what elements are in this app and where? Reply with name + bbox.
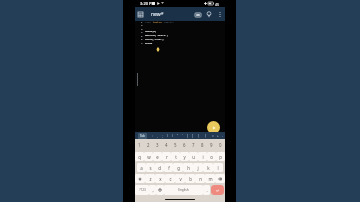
button[interactable]: { <box>195 132 202 139</box>
button[interactable]: ?123 <box>135 185 149 195</box>
button[interactable]: Tips <box>204 10 213 19</box>
button[interactable]: ] <box>190 132 195 139</box>
staticText: color('cyan') <box>145 37 164 40</box>
button[interactable]: v <box>175 174 185 183</box>
button[interactable]: Terminal <box>193 10 202 19</box>
staticText: h <box>187 165 190 171</box>
staticText: from <box>145 20 153 23</box>
staticText: a <box>140 165 143 171</box>
staticText: u <box>192 154 195 160</box>
button[interactable]: q <box>135 152 144 161</box>
button[interactable]: , <box>155 132 160 139</box>
button[interactable]: p <box>216 152 225 161</box>
button[interactable]: ) <box>170 132 175 139</box>
button[interactable]: m <box>205 174 215 183</box>
button[interactable]: s <box>146 163 155 172</box>
staticText: : <box>152 134 153 138</box>
button[interactable]: c <box>165 174 175 183</box>
button[interactable]: Navigation menu <box>136 10 145 19</box>
button[interactable]: : <box>150 132 155 139</box>
button[interactable]: e <box>153 152 162 161</box>
staticText: new* <box>151 11 164 18</box>
staticText: 3 <box>141 27 143 30</box>
staticText: k <box>207 165 210 171</box>
button[interactable]: y <box>180 152 189 161</box>
button[interactable]: o <box>207 152 216 161</box>
button[interactable]: Emoji <box>156 185 164 195</box>
button[interactable]: } <box>202 132 210 139</box>
staticText: b <box>189 176 192 182</box>
staticText: 45 <box>215 2 220 7</box>
staticText: c <box>169 176 172 182</box>
button[interactable]: 7 <box>189 139 198 151</box>
button[interactable]: Backspace <box>215 174 225 183</box>
staticText: x <box>159 176 162 182</box>
staticText: 2 <box>141 23 143 26</box>
staticText: g <box>177 165 180 171</box>
button[interactable]: More options <box>215 10 224 19</box>
staticText: q <box>138 154 141 160</box>
button[interactable]: + <box>215 132 220 139</box>
button[interactable]: 3 <box>153 139 162 151</box>
button[interactable]: 5 <box>171 139 180 151</box>
staticText: 7 <box>141 41 143 44</box>
staticText: ( <box>167 134 168 138</box>
staticText: speed(0) <box>145 29 157 32</box>
staticText: z <box>149 176 152 182</box>
staticText: l <box>217 165 219 171</box>
button[interactable]: English <box>164 185 203 195</box>
button[interactable]: t <box>171 152 180 161</box>
button[interactable]: ( <box>165 132 170 139</box>
button[interactable]: 6 <box>180 139 189 151</box>
button[interactable]: - <box>220 132 225 139</box>
button[interactable]: ' <box>180 132 185 139</box>
button[interactable]: i <box>198 152 207 161</box>
staticText: o <box>210 154 213 160</box>
button[interactable]: Shift <box>135 174 145 183</box>
staticText: English <box>178 188 189 192</box>
button[interactable]: ; <box>160 132 165 139</box>
button[interactable]: r <box>162 152 171 161</box>
staticText: n <box>199 176 202 182</box>
button[interactable]: Run <box>207 121 220 134</box>
button[interactable]: w <box>144 152 153 161</box>
button[interactable]: x <box>155 174 165 183</box>
button[interactable]: 0 <box>216 139 225 151</box>
staticText: 3 <box>156 142 159 148</box>
button[interactable]: [ <box>185 132 190 139</box>
staticText: 5 <box>141 34 143 37</box>
staticText: 1 <box>138 142 141 148</box>
staticText: r <box>166 154 168 160</box>
button[interactable]: 9 <box>207 139 216 151</box>
button[interactable]: g <box>173 163 183 172</box>
button[interactable]: , <box>149 185 156 195</box>
button[interactable]: . <box>203 185 210 195</box>
staticText: 1 <box>141 20 143 23</box>
button[interactable]: " <box>175 132 180 139</box>
button[interactable]: = <box>210 132 215 139</box>
button[interactable]: z <box>145 174 155 183</box>
button[interactable]: b <box>185 174 195 183</box>
button[interactable]: 2 <box>144 139 153 151</box>
staticText: w <box>147 154 151 160</box>
button[interactable]: u <box>189 152 198 161</box>
staticText: Tab <box>140 134 145 138</box>
button[interactable]: d <box>155 163 164 172</box>
button[interactable]: h <box>183 163 193 172</box>
button[interactable]: 8 <box>198 139 207 151</box>
button[interactable]: k <box>203 163 213 172</box>
button[interactable]: l <box>213 163 223 172</box>
button[interactable]: n <box>195 174 205 183</box>
button[interactable]: f <box>164 163 173 172</box>
button[interactable]: Enter <box>211 185 224 195</box>
staticText: y <box>183 154 186 160</box>
button[interactable]: 1 <box>135 139 144 151</box>
staticText: + <box>217 134 219 138</box>
button[interactable]: Tab <box>135 132 150 139</box>
button[interactable]: 4 <box>162 139 171 151</box>
staticText: 8 <box>201 142 204 148</box>
staticText: ; <box>162 134 163 138</box>
button[interactable]: a <box>137 163 146 172</box>
button[interactable]: j <box>193 163 203 172</box>
staticText: [ <box>187 134 188 138</box>
